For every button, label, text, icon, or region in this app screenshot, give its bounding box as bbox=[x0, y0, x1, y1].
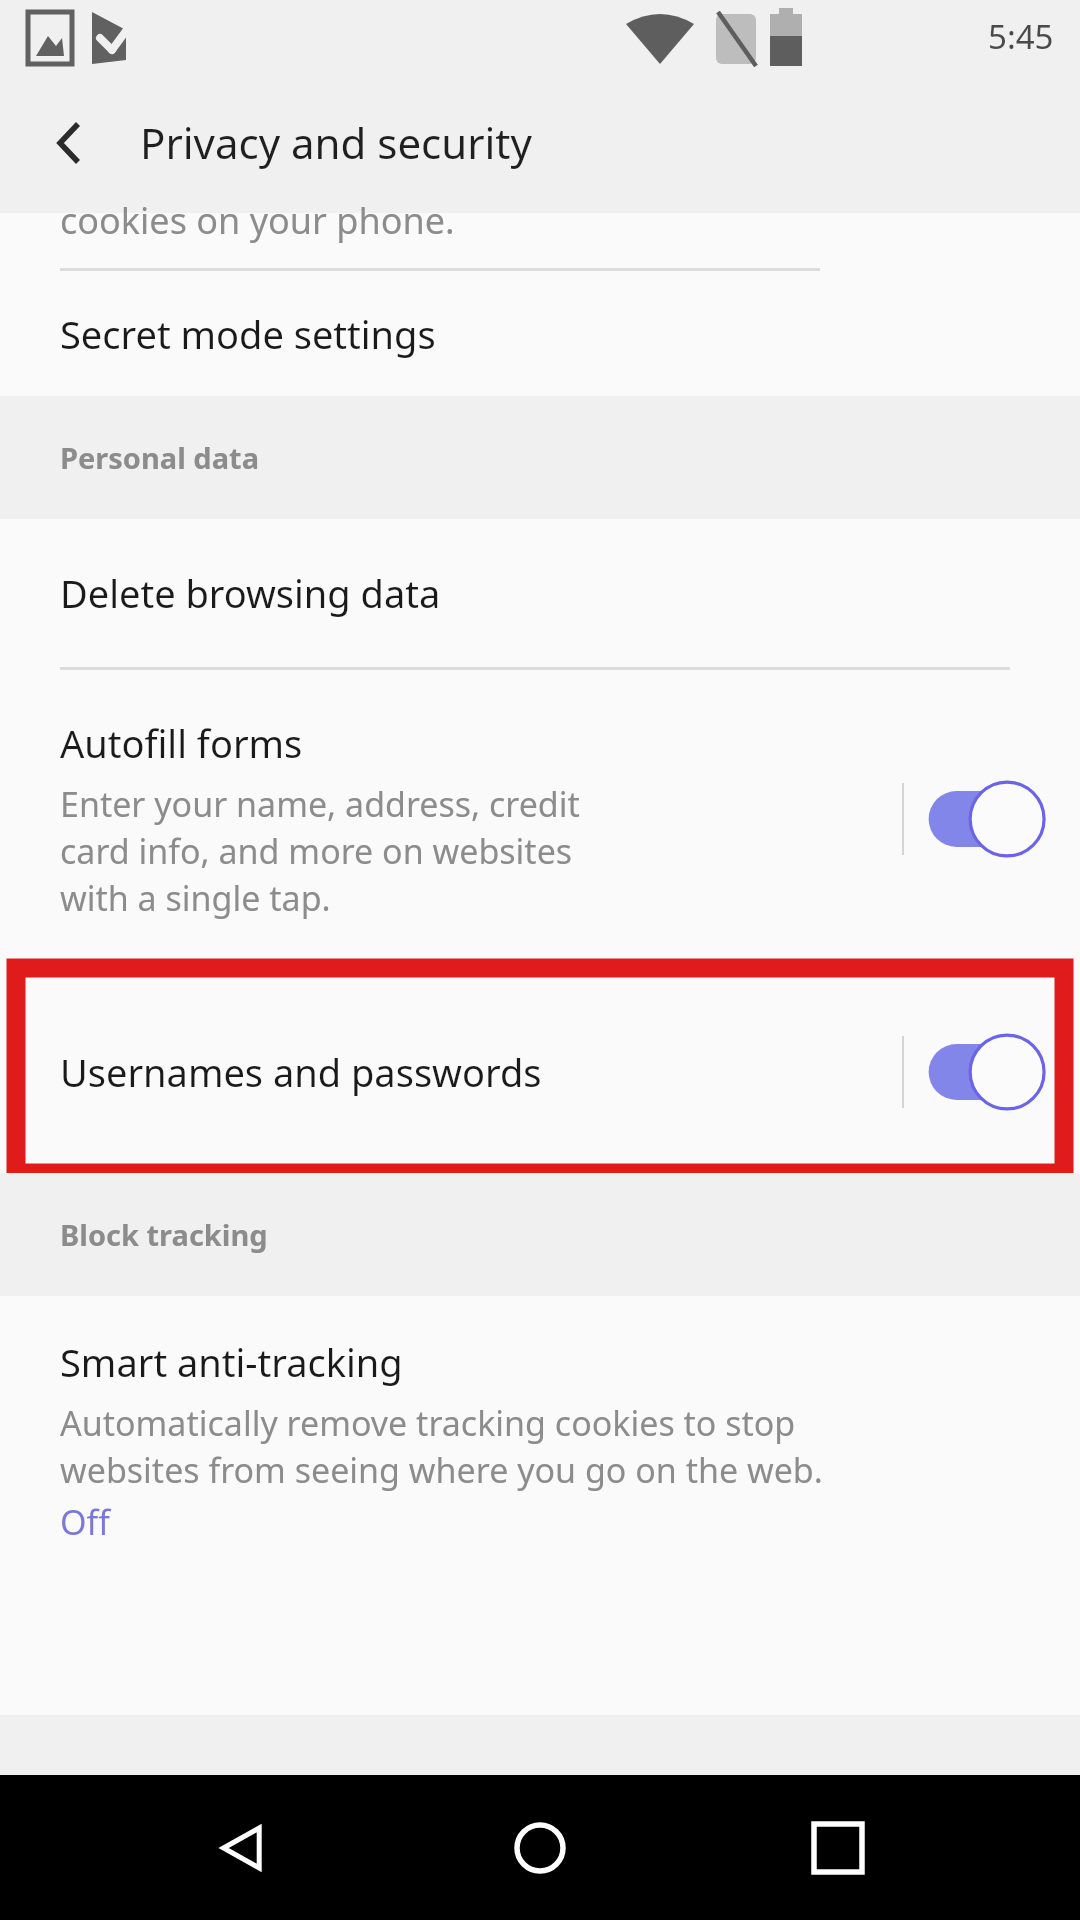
staticText: Privacy and security bbox=[140, 114, 532, 171]
staticText: Autofill forms bbox=[60, 717, 303, 769]
button[interactable]: Smart anti-tracking bbox=[0, 1296, 1080, 1575]
button[interactable]: Back bbox=[188, 1793, 298, 1903]
staticText: Enter your name, address, credit card in… bbox=[60, 781, 580, 921]
button[interactable]: Delete browsing data bbox=[0, 519, 1080, 667]
staticText: Secret mode settings bbox=[60, 308, 436, 360]
staticText: Off bbox=[60, 1499, 110, 1545]
staticText: Delete browsing data bbox=[60, 567, 441, 619]
button[interactable]: Toggle bbox=[926, 781, 1058, 857]
staticText: Personal data bbox=[60, 438, 260, 477]
button[interactable]: Home bbox=[485, 1793, 595, 1903]
staticText: Smart anti-tracking bbox=[60, 1336, 403, 1388]
staticText: 5:45 bbox=[988, 14, 1054, 59]
button[interactable]: Back bbox=[32, 105, 108, 181]
button[interactable]: Recents bbox=[783, 1793, 893, 1903]
button[interactable]: Usernames and passwords bbox=[0, 971, 1080, 1173]
button[interactable]: Toggle bbox=[926, 1034, 1058, 1110]
staticText: Automatically remove tracking cookies to… bbox=[60, 1400, 823, 1493]
button[interactable]: Autofill forms bbox=[0, 670, 1080, 968]
staticText: cookies on your phone. bbox=[60, 196, 455, 245]
button[interactable]: Secret mode settings bbox=[0, 271, 1080, 396]
staticText: Block tracking bbox=[60, 1215, 268, 1254]
staticText: Usernames and passwords bbox=[60, 1046, 902, 1098]
